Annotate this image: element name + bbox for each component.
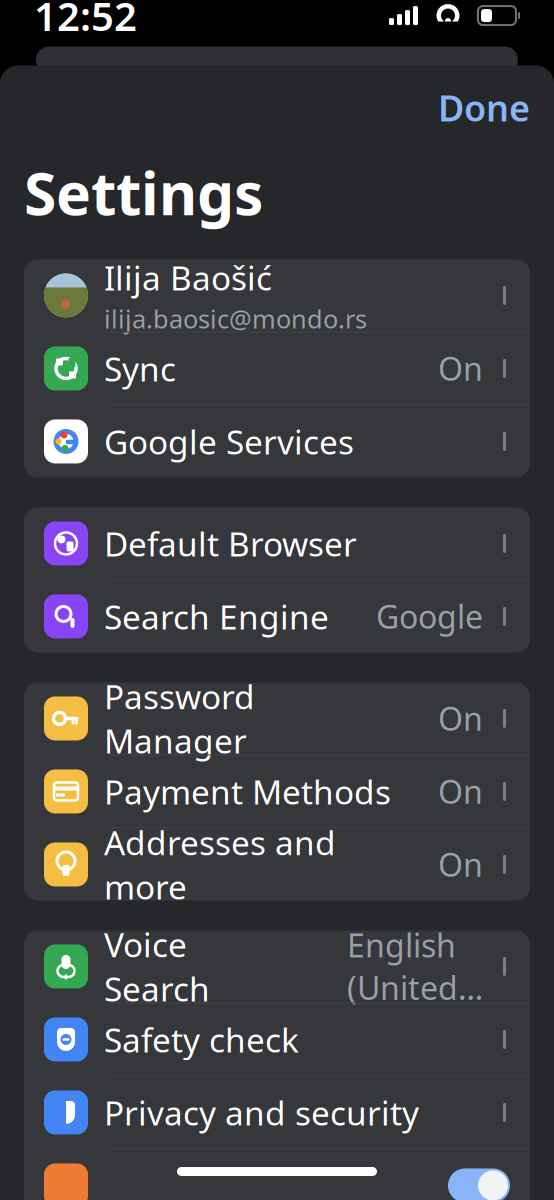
staticText: On [438, 843, 483, 886]
button[interactable]: Ilija Baošić [24, 259, 530, 332]
staticText: On [438, 697, 483, 740]
staticText: On [438, 770, 483, 813]
button[interactable]: Voice Search [24, 930, 530, 1003]
staticText: Done [438, 84, 530, 131]
staticText: Sync [104, 346, 176, 391]
staticText: ilija.baosic@mondo.rs [104, 302, 367, 335]
button[interactable]: Google Services [24, 405, 530, 477]
button[interactable]: Sync [24, 332, 530, 405]
staticText: 12:52 [34, 0, 137, 42]
staticText: Settings [24, 153, 263, 231]
button[interactable]: Safety check [24, 1003, 530, 1076]
staticText: Safety check [104, 1017, 299, 1062]
staticText: English (United… [347, 924, 483, 1009]
button[interactable]: Notifications [24, 1149, 530, 1200]
staticText: Ilija Baošić [104, 255, 272, 300]
staticText: On [438, 347, 483, 390]
staticText: Payment Methods [104, 769, 391, 814]
button[interactable]: Privacy and security [24, 1076, 530, 1149]
staticText: Password Manager [104, 674, 255, 763]
button[interactable]: Payment Methods [24, 755, 530, 828]
button[interactable]: Search Engine [24, 580, 530, 652]
staticText: Search Engine [104, 594, 329, 639]
button[interactable]: Password Manager [24, 682, 530, 755]
staticText: Addresses and more [104, 820, 336, 909]
staticText: Google Services [104, 419, 354, 464]
staticText: Default Browser [104, 521, 357, 566]
button[interactable]: Done [414, 74, 554, 141]
button[interactable]: Default Browser [24, 507, 530, 580]
staticText: Privacy and security [104, 1090, 419, 1135]
staticText: Voice Search [104, 922, 210, 1011]
staticText: Google [376, 595, 483, 638]
button[interactable]: Addresses and more [24, 828, 530, 900]
